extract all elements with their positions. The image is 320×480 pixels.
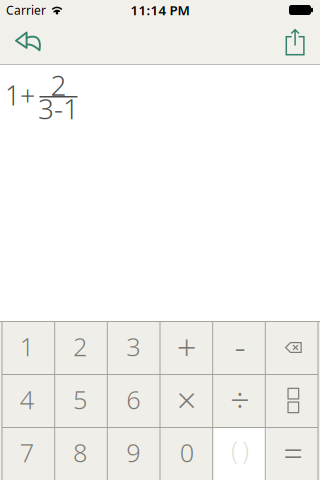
button[interactable]: Undo	[0, 31, 42, 52]
staticText: 5	[73, 383, 87, 416]
button[interactable]: 8	[53, 427, 107, 480]
staticText: 4	[20, 383, 34, 416]
staticText: ×	[177, 376, 197, 422]
staticText: 7	[20, 436, 34, 469]
button[interactable]: Share	[285, 28, 320, 55]
button[interactable]: 2	[53, 321, 107, 374]
staticText: 6	[126, 383, 140, 416]
staticText: 3-1	[38, 90, 79, 127]
button[interactable]: 5	[53, 374, 107, 427]
staticText: 0	[180, 436, 194, 469]
button[interactable]: ÷	[213, 374, 267, 427]
button[interactable]: 3	[107, 321, 160, 374]
button[interactable]: +	[160, 321, 213, 374]
staticText: 2	[50, 66, 66, 104]
button[interactable]: 0	[160, 427, 213, 480]
button[interactable]: Parentheses	[213, 427, 267, 480]
staticText: 8	[73, 436, 87, 469]
staticText: 11:14 PM	[130, 1, 189, 19]
button[interactable]: 1	[0, 321, 53, 374]
button[interactable]: 7	[0, 427, 53, 480]
button[interactable]: =	[267, 427, 320, 480]
button[interactable]: Fraction	[267, 374, 320, 427]
staticText: 3	[126, 330, 140, 363]
staticText: Carrier	[6, 2, 46, 18]
staticText: ( )	[231, 433, 249, 466]
button[interactable]: -	[213, 321, 267, 374]
staticText: +	[177, 323, 197, 369]
button[interactable]: ×	[160, 374, 213, 427]
staticText: ÷	[230, 376, 250, 422]
staticText: =	[283, 429, 303, 475]
staticText: 1+	[5, 77, 35, 113]
button[interactable]: 9	[107, 427, 160, 480]
staticText: -	[234, 323, 245, 369]
button[interactable]: 4	[0, 374, 53, 427]
staticText: 1	[20, 330, 34, 363]
button[interactable]: 6	[107, 374, 160, 427]
staticText: 2	[73, 330, 87, 363]
staticText: 9	[126, 436, 140, 469]
button[interactable]: Delete	[267, 321, 320, 374]
